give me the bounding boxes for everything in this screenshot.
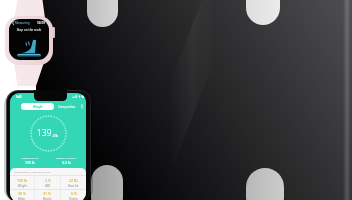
button[interactable]: WEIGHT TO GOAL — [48, 156, 84, 165]
staticText: Weight — [33, 105, 43, 109]
staticText: Step on the scale — [12, 28, 46, 32]
staticText: 6 % — [71, 191, 77, 196]
staticText: Composition — [58, 105, 76, 109]
button[interactable]: 2 % — [35, 176, 60, 189]
staticText: .3 lb — [52, 134, 59, 138]
button[interactable]: CURRENT GOAL — [12, 156, 48, 165]
staticText: 139 lb — [17, 178, 28, 183]
button[interactable]: 139 lb — [10, 176, 34, 189]
button[interactable]: 31 % — [35, 190, 60, 200]
staticText: 139 — [37, 127, 52, 139]
staticText: BMI — [45, 184, 50, 188]
staticText: 4.3 lb — [62, 160, 71, 165]
staticText: 2 % — [45, 178, 51, 183]
staticText: 135 lb — [25, 160, 35, 165]
button[interactable]: Weight — [21, 103, 54, 110]
staticText: 9:41 — [16, 95, 22, 99]
staticText: 31 % — [43, 191, 52, 196]
staticText: Measuring — [15, 21, 30, 25]
staticText: Muscle — [43, 197, 52, 200]
staticText: Protein — [69, 197, 78, 200]
staticText: Tue, January 21, 2025 at 4:19 PM — [14, 170, 51, 173]
staticText: WEIGHT TO GOAL — [56, 156, 76, 159]
button[interactable]: Composition — [54, 103, 79, 110]
staticText: 39 % — [18, 191, 27, 196]
staticText: 14:19 — [37, 21, 46, 25]
button[interactable]: 22 BL — [61, 176, 86, 189]
staticText: CURRENT GOAL — [21, 156, 39, 159]
staticText: 22 BL — [69, 178, 79, 183]
staticText: Weight — [18, 184, 27, 188]
staticText: Water — [18, 197, 26, 200]
button[interactable]: More options — [79, 103, 84, 110]
button[interactable]: 39 % — [10, 190, 34, 200]
button[interactable]: 6 % — [61, 190, 86, 200]
staticText: Bone fat — [68, 184, 79, 188]
